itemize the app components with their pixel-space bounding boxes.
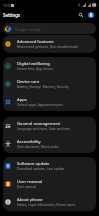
staticText: Google settings (15, 27, 41, 32)
staticText: Battery, Storage, Memory, Security (17, 85, 69, 89)
button[interactable]: Advanced features (3, 35, 96, 53)
staticText: General management (17, 121, 61, 127)
button[interactable]: Google settings (3, 23, 96, 34)
staticText: 17:37 (3, 3, 13, 8)
button[interactable]: Account (86, 10, 95, 19)
staticText: Status, Legal information, Phone name (17, 203, 76, 207)
button[interactable]: Software update (3, 157, 96, 175)
staticText: Motion and gestures, One-handed mode (17, 45, 78, 49)
staticText: Screen time, App timers (17, 67, 53, 71)
button[interactable]: Apps (3, 93, 96, 111)
staticText: User manual (17, 179, 43, 185)
staticText: Apps (17, 97, 27, 103)
button[interactable]: Search (76, 10, 85, 19)
button[interactable]: Digital wellbeing (3, 57, 96, 75)
staticText: Device care (17, 79, 40, 85)
staticText: Default apps, App permissions (17, 103, 63, 107)
staticText: About phone (17, 197, 43, 203)
staticText: Settings (3, 12, 21, 18)
staticText: User manual (17, 185, 37, 189)
staticText: Accessibility (17, 139, 41, 145)
staticText: Download updates, Last update (17, 167, 65, 171)
staticText: Advanced features (17, 39, 54, 45)
button[interactable]: General management (3, 117, 96, 135)
staticText: Software update (17, 161, 50, 167)
button[interactable]: User manual (3, 175, 96, 193)
staticText: Language and input, Date and time (17, 127, 71, 131)
staticText: Digital wellbeing (17, 61, 50, 67)
button[interactable]: Accessibility (3, 135, 96, 153)
button[interactable]: About phone (3, 193, 96, 211)
staticText: Voice Assistant, Mono audio (17, 145, 59, 149)
button[interactable]: Device care (3, 75, 96, 93)
